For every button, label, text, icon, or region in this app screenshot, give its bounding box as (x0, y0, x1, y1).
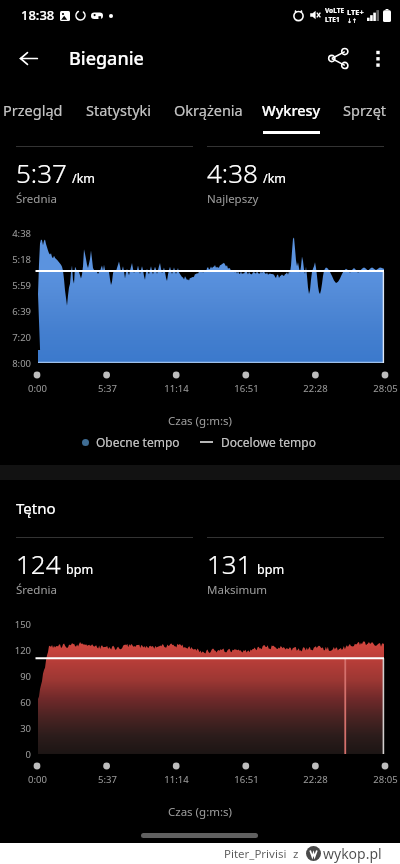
staticText: 60 (20, 696, 31, 709)
staticText: 5:37 (98, 773, 117, 786)
staticText: 11:14 (164, 773, 189, 786)
staticText: Średnia (16, 582, 57, 598)
staticText: Sprzęt (343, 100, 387, 120)
staticText: Piter_Privisi (224, 846, 287, 862)
staticText: Wykresy (262, 100, 321, 120)
staticText: VoLTE (325, 6, 345, 15)
staticText: 28:05 (373, 382, 398, 395)
staticText: 11:14 (164, 382, 189, 395)
staticText: 0:00 (28, 382, 47, 395)
staticText: Tętno (16, 498, 56, 518)
staticText: Przegląd (3, 100, 63, 120)
staticText: 16:51 (234, 773, 259, 786)
staticText: Bieganie (69, 46, 144, 71)
button[interactable]: More options (356, 36, 400, 80)
staticText: Czas (g:m:s) (0, 413, 400, 429)
button[interactable]: Okrążenia (162, 86, 254, 134)
staticText: Średnia (16, 191, 57, 207)
staticText: z (293, 846, 299, 862)
button[interactable]: Docelowe tempo (200, 433, 316, 451)
staticText: 124 (16, 546, 61, 581)
staticText: 150 (14, 618, 31, 631)
staticText: 4:38 (12, 227, 31, 240)
staticText: 131 (207, 546, 252, 581)
staticText: 90 (20, 670, 31, 683)
button[interactable]: Przegląd (0, 86, 72, 134)
staticText: 0:00 (28, 773, 47, 786)
staticText: /km (263, 170, 287, 187)
staticText: 5:37 (98, 382, 117, 395)
staticText: Czas (g:m:s) (0, 804, 400, 820)
staticText: 30 (20, 722, 31, 735)
staticText: 18:38 (21, 6, 55, 24)
staticText: Statystyki (86, 100, 152, 120)
button[interactable]: Sprzęt (331, 86, 399, 134)
staticText: /km (72, 170, 96, 187)
staticText: 8:00 (12, 357, 31, 370)
staticText: Maksimum (207, 582, 268, 598)
staticText: wykop.pl (323, 844, 382, 863)
staticText: 4:38 (207, 155, 258, 190)
button[interactable]: Back (8, 38, 48, 78)
staticText: 5:18 (12, 253, 31, 266)
staticText: 28:05 (373, 773, 398, 786)
staticText: 0 (25, 748, 31, 761)
staticText: 5:37 (16, 155, 67, 190)
button[interactable]: Obecne tempo (82, 433, 180, 451)
staticText: LTE1 (325, 15, 340, 24)
staticText: 5:59 (12, 279, 31, 292)
staticText: Obecne tempo (96, 434, 180, 450)
button[interactable]: Wykresy (254, 86, 329, 134)
staticText: Okrążenia (174, 100, 243, 120)
staticText: bpm (66, 561, 94, 578)
staticText: bpm (257, 561, 285, 578)
button[interactable]: Share (316, 36, 360, 80)
staticText: 120 (14, 644, 31, 657)
staticText: 22:28 (303, 773, 328, 786)
staticText: Najlepszy (207, 191, 259, 207)
button[interactable]: Statystyki (76, 86, 162, 134)
staticText: 22:28 (303, 382, 328, 395)
staticText: 16:51 (234, 382, 259, 395)
staticText: Docelowe tempo (221, 434, 316, 450)
staticText: 6:39 (12, 305, 31, 318)
staticText: LTE+ (347, 7, 364, 17)
staticText: ↓↑ (347, 17, 358, 24)
staticText: 7:20 (12, 331, 31, 344)
